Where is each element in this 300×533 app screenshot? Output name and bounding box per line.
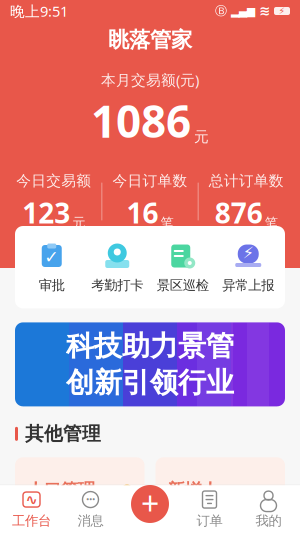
staticText: ∿: [25, 491, 37, 508]
staticText: 异常上报: [222, 277, 274, 293]
staticText: 元: [194, 128, 209, 146]
staticText: 我的: [255, 513, 281, 529]
staticText: 考勤打卡: [91, 277, 143, 293]
button[interactable]: ⚡︎: [215, 237, 281, 297]
staticText: 消息: [77, 513, 103, 529]
staticText: 创新引领行业: [66, 365, 234, 400]
staticText: 笔: [160, 215, 173, 231]
staticText: Ⓑ: [215, 4, 227, 18]
button[interactable]: 新增: [131, 483, 169, 525]
staticText: 工作台: [12, 513, 51, 529]
button[interactable]: ∿: [2, 490, 61, 529]
staticText: 1086: [91, 91, 191, 150]
button[interactable]: 考勤打卡: [84, 237, 150, 297]
staticText: ⚡︎: [243, 244, 254, 262]
staticText: 其他管理: [25, 422, 101, 445]
staticText: 笔: [265, 215, 278, 231]
staticText: 16: [126, 194, 158, 231]
button[interactable]: ···: [61, 490, 120, 529]
staticText: 本月交易额(元): [101, 70, 199, 89]
staticText: 今日交易额: [16, 172, 91, 190]
staticText: ✓: [44, 247, 59, 267]
staticText: 123: [22, 194, 70, 231]
staticText: 今日订单数: [112, 172, 187, 190]
staticText: 眺落管家: [108, 27, 192, 53]
staticText: 人口管理: [27, 479, 95, 501]
staticText: 科技助力景管: [66, 329, 234, 363]
staticText: 审批: [39, 277, 65, 293]
staticText: 晚上9:51: [10, 1, 68, 21]
staticText: +: [141, 482, 159, 524]
button[interactable]: ✓: [19, 237, 84, 297]
button[interactable]: 科技助力景管: [0, 322, 300, 406]
staticText: ⚡︎: [278, 6, 285, 16]
staticText: ≋: [259, 3, 270, 18]
staticText: 景区巡检: [157, 277, 209, 293]
staticText: 订单: [196, 513, 222, 529]
staticText: ···: [86, 491, 95, 506]
staticText: 总计订单数: [209, 172, 284, 190]
button[interactable]: 人口管理: [15, 457, 144, 513]
button[interactable]: 新增人口: [155, 457, 285, 513]
staticText: 新增人口: [167, 479, 218, 522]
staticText: 元: [72, 215, 85, 231]
button[interactable]: 景区巡检: [150, 237, 215, 297]
staticText: 876: [215, 194, 263, 231]
button[interactable]: 我的: [239, 490, 298, 529]
button[interactable]: 订单: [180, 490, 239, 529]
staticText: ▂▄▆: [231, 5, 255, 17]
